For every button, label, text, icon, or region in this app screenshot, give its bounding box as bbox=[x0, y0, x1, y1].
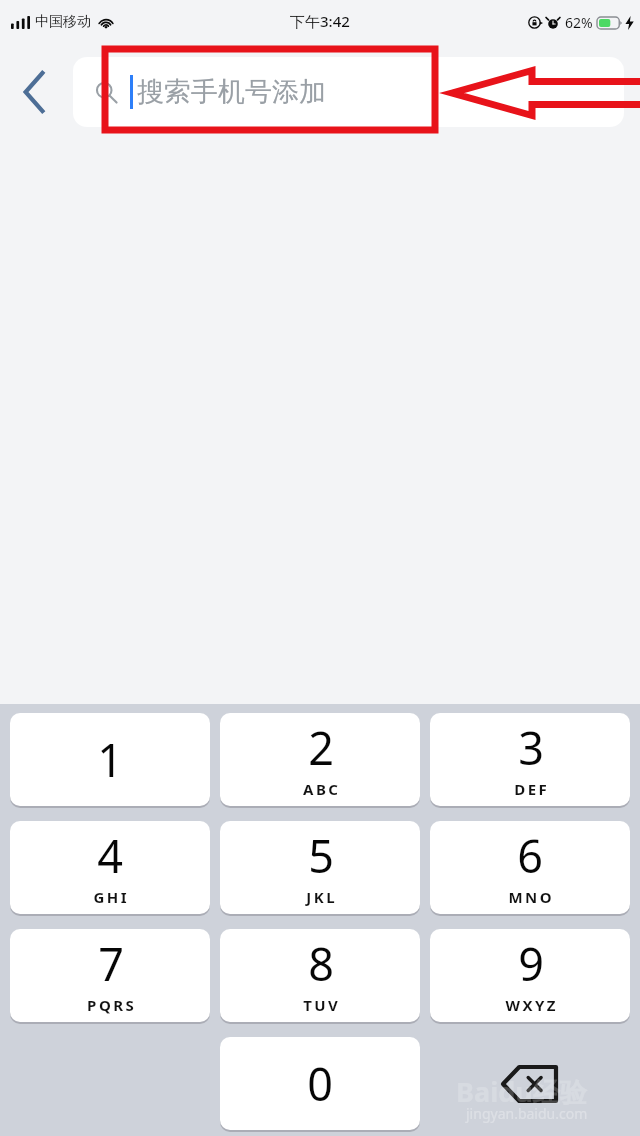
staticText: jingyan.baidu.com bbox=[466, 1104, 588, 1123]
staticText: J K L bbox=[306, 887, 335, 907]
button[interactable]: 2 bbox=[220, 713, 420, 806]
staticText: 5 bbox=[308, 825, 334, 886]
staticText: 62% bbox=[565, 13, 593, 32]
staticText: 9 bbox=[518, 933, 544, 994]
staticText: A B C bbox=[303, 779, 338, 799]
staticText: 下午3:42 bbox=[290, 11, 350, 31]
button[interactable]: 8 bbox=[220, 929, 420, 1022]
staticText: 6 bbox=[517, 825, 543, 886]
button[interactable]: 6 bbox=[430, 821, 630, 914]
staticText: Baidu经验 bbox=[456, 1073, 587, 1110]
staticText: 0 bbox=[307, 1053, 333, 1114]
staticText: 7 bbox=[98, 933, 124, 994]
staticText: 搜索手机号添加 bbox=[137, 75, 326, 109]
staticText: 3 bbox=[518, 717, 544, 778]
staticText: 4 bbox=[97, 825, 123, 886]
staticText: M N O bbox=[508, 887, 552, 907]
button[interactable]: 1 bbox=[10, 713, 210, 806]
staticText: 中国移动 bbox=[35, 13, 91, 31]
button[interactable]: 4 bbox=[10, 821, 210, 914]
button[interactable]: 搜索手机号添加 bbox=[73, 57, 624, 127]
staticText: T U V bbox=[303, 995, 338, 1015]
button[interactable]: 3 bbox=[430, 713, 630, 806]
staticText: D E F bbox=[514, 779, 547, 799]
button[interactable]: Backspace bbox=[430, 1037, 630, 1130]
button[interactable]: Back bbox=[6, 64, 62, 120]
button[interactable]: 5 bbox=[220, 821, 420, 914]
staticText: 8 bbox=[308, 933, 334, 994]
button[interactable]: 9 bbox=[430, 929, 630, 1022]
staticText: G H I bbox=[93, 887, 127, 907]
button[interactable]: 7 bbox=[10, 929, 210, 1022]
staticText: P Q R S bbox=[87, 995, 134, 1015]
button[interactable]: 0 bbox=[220, 1037, 420, 1130]
staticText: 2 bbox=[308, 717, 334, 778]
staticText: W X Y Z bbox=[505, 995, 556, 1015]
staticText: 1 bbox=[97, 729, 123, 790]
